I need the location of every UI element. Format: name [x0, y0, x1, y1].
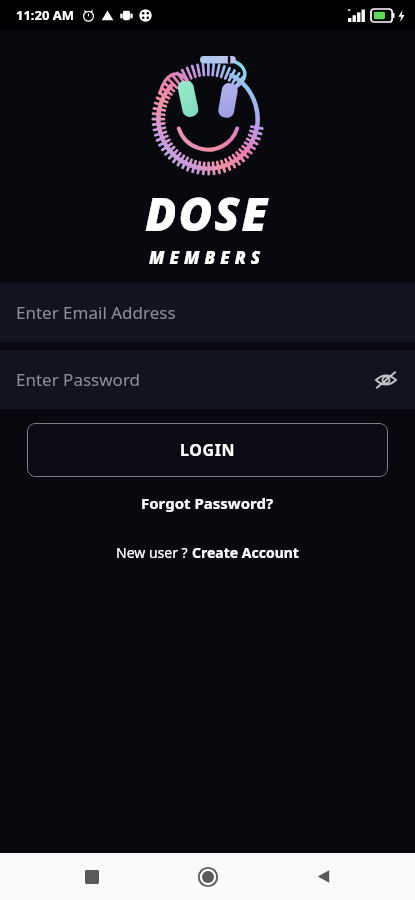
- staticText: DOSE: [145, 182, 270, 245]
- button[interactable]: Enter Password: [0, 350, 415, 409]
- button[interactable]: Forgot Password?: [131, 488, 284, 518]
- button[interactable]: LOGIN: [27, 423, 388, 477]
- button[interactable]: Home: [184, 853, 232, 900]
- staticText: 11:20 AM: [16, 6, 75, 24]
- button[interactable]: New user ?: [106, 538, 309, 567]
- button[interactable]: Back: [299, 853, 347, 900]
- button[interactable]: Enter Email Address: [0, 283, 415, 342]
- staticText: Create Account: [192, 543, 299, 562]
- button[interactable]: Show password: [365, 359, 407, 401]
- staticText: MEMBERS: [149, 246, 266, 269]
- staticText: Forgot Password?: [141, 493, 274, 513]
- staticText: New user ?: [116, 543, 192, 562]
- staticText: Enter Password: [16, 368, 141, 391]
- staticText: Enter Email Address: [16, 301, 176, 324]
- staticText: LOGIN: [180, 439, 236, 461]
- button[interactable]: Recent apps: [68, 853, 116, 900]
